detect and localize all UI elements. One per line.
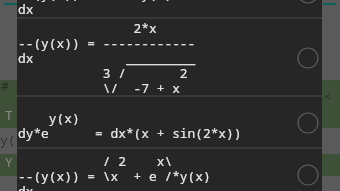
staticText: T <box>5 106 13 124</box>
staticText: y( <box>0 131 16 149</box>
button[interactable]: y(x) dy*e = dx*(x + sin(2*x)) <box>17 97 322 149</box>
staticText: 2*x --(y(x)) = ------------ dx _________… <box>18 19 196 97</box>
staticText: y(x) dy*e = dx*(x + sin(2*x)) <box>18 109 242 142</box>
button[interactable]: / 2 x\ --(y(x)) = \x + e /*y(x) dx <box>17 149 322 191</box>
staticText: / 2 x\ --(y(x)) = \x + e /*y(x) dx <box>18 152 211 191</box>
staticText: d 2 --(y(x)) = x + y(x) dx <box>18 0 173 18</box>
button[interactable]: d 2 --(y(x)) = x + y(x) dx <box>17 0 322 19</box>
staticText: < <box>324 87 332 105</box>
staticText: Y <box>5 153 13 171</box>
staticText: # 2 <box>1 77 25 95</box>
button[interactable]: 2*x --(y(x)) = ------------ dx _________… <box>17 19 322 97</box>
